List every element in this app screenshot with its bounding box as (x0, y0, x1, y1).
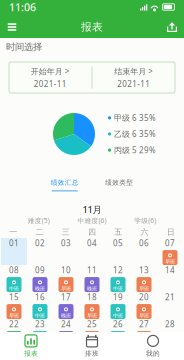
staticText: 我的 (146, 349, 160, 358)
button[interactable]: 报表 (0, 333, 61, 359)
staticText: 时间选择 (6, 41, 42, 53)
staticText: 四 (88, 227, 96, 237)
button[interactable]: 07 (157, 238, 183, 265)
button[interactable]: Export (159, 17, 184, 37)
button[interactable]: 11 (79, 265, 105, 292)
staticText: 28 (165, 319, 175, 329)
staticText: 早班 (87, 312, 97, 319)
staticText: 日 (167, 227, 175, 237)
button[interactable]: 14 (157, 265, 183, 292)
staticText: 结束年月 > (114, 66, 153, 76)
button[interactable]: 09 (27, 265, 53, 292)
staticText: 10 (61, 265, 71, 275)
button[interactable]: 05 (105, 238, 131, 265)
staticText: 晚班 (87, 285, 97, 292)
button[interactable]: 23 (27, 319, 53, 346)
staticText: 早班 (87, 339, 97, 346)
button[interactable]: 18 (79, 292, 105, 319)
staticText: 早班 (139, 285, 149, 292)
staticText: 六 (141, 227, 149, 237)
button[interactable]: 06 (131, 238, 157, 265)
staticText: 26 (113, 319, 123, 329)
button[interactable]: 26 (105, 319, 131, 346)
staticText: 2021-11 (117, 78, 150, 89)
button[interactable]: 22 (1, 319, 27, 346)
button[interactable]: 25 (79, 319, 105, 346)
staticText: 早班 (139, 312, 149, 319)
staticText: 24 (61, 319, 71, 329)
staticText: 排班 (85, 349, 99, 358)
staticText: 09 (35, 265, 45, 275)
button[interactable]: 16 (27, 292, 53, 319)
staticText: 早班 (9, 312, 19, 319)
staticText: 15 (9, 292, 19, 302)
button[interactable]: 21 (157, 292, 183, 319)
staticText: 02 (35, 238, 45, 248)
staticText: 早班 (61, 285, 71, 292)
staticText: 中难度(6) (77, 216, 106, 225)
staticText: 早班 (165, 258, 175, 265)
staticText: 11:06 (9, 0, 36, 14)
staticText: 21 (165, 292, 175, 302)
staticText: 开始年月 > (31, 66, 70, 76)
staticText: 报表 (24, 349, 38, 358)
staticText: 01 (9, 238, 19, 248)
button[interactable]: 绩效汇总 (37, 177, 92, 193)
staticText: 14 (165, 265, 175, 275)
staticText: 27 (139, 319, 149, 329)
staticText: 07 (165, 238, 175, 248)
button[interactable]: 15 (1, 292, 27, 319)
staticText: 中班 (113, 285, 123, 292)
staticText: 乙级 6 35% (114, 129, 156, 139)
staticText: 05 (113, 238, 123, 248)
staticText: 06 (139, 238, 149, 248)
button[interactable]: 04 (79, 238, 105, 265)
button[interactable]: 13 (131, 265, 157, 292)
staticText: 16 (35, 292, 45, 302)
staticText: 03 (61, 238, 71, 248)
button[interactable]: 28 (157, 319, 183, 346)
button[interactable]: 10 (53, 265, 79, 292)
staticText: 11月 (82, 203, 101, 216)
button[interactable]: 排班 (61, 333, 122, 359)
button[interactable]: 01 (1, 238, 27, 265)
staticText: 22 (9, 319, 19, 329)
staticText: 19 (113, 292, 123, 302)
staticText: 二 (35, 227, 43, 237)
staticText: 晚班 (35, 285, 45, 292)
staticText: 25 (87, 319, 97, 329)
staticText: 20 (139, 292, 149, 302)
button[interactable]: 我的 (122, 333, 183, 359)
button[interactable]: 03 (53, 238, 79, 265)
button[interactable]: 02 (27, 238, 53, 265)
button[interactable]: 17 (53, 292, 79, 319)
staticText: 学级(6) (134, 216, 156, 225)
button[interactable]: 结束年月 > (92, 62, 175, 93)
staticText: 一 (9, 227, 17, 237)
button[interactable]: 绩效类型 (92, 177, 146, 193)
staticText: 报表 (81, 20, 103, 33)
staticText: 中班 (113, 312, 123, 319)
staticText: 23 (35, 319, 45, 329)
button[interactable]: 20 (131, 292, 157, 319)
staticText: 五 (114, 227, 122, 237)
staticText: 12 (113, 265, 123, 275)
button[interactable]: 开始年月 > (9, 62, 91, 93)
button[interactable]: 19 (105, 292, 131, 319)
staticText: 18 (87, 292, 97, 302)
staticText: 绩效类型 (105, 178, 133, 187)
staticText: 13 (139, 265, 149, 275)
button[interactable]: 12 (105, 265, 131, 292)
button[interactable]: 24 (53, 319, 79, 346)
button[interactable]: Menu (0, 17, 25, 37)
staticText: 11 (87, 265, 97, 275)
staticText: 08 (9, 265, 19, 275)
staticText: 中班 (35, 312, 45, 319)
button[interactable]: 08 (1, 265, 27, 292)
button[interactable]: 27 (131, 319, 157, 346)
staticText: 绩效汇总 (51, 178, 79, 187)
staticText: 17 (61, 292, 71, 302)
